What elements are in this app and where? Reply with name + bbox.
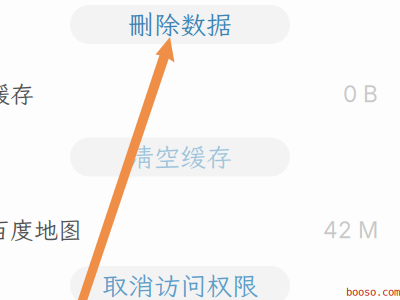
staticText: 缓存	[0, 78, 34, 110]
button[interactable]: 删除数据	[70, 5, 290, 44]
staticText: 清空缓存	[128, 140, 232, 174]
staticText: 删除数据	[128, 7, 232, 42]
staticText: 42 M	[323, 216, 378, 244]
staticText: booso.com	[346, 286, 400, 298]
staticText: 0 B	[343, 80, 378, 108]
staticText: 取消访问权限	[102, 268, 258, 300]
button[interactable]: 清空缓存	[70, 137, 290, 176]
button[interactable]: 取消访问权限	[70, 266, 290, 300]
staticText: 百度地图	[0, 214, 82, 246]
